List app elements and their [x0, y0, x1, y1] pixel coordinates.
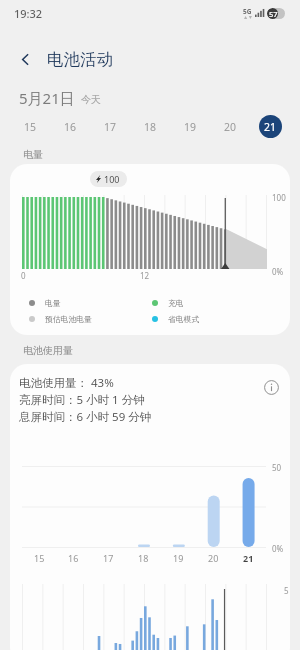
staticText: 100	[272, 192, 286, 203]
button[interactable]: 17	[99, 115, 122, 138]
staticText: 电量	[23, 148, 43, 161]
button[interactable]: 18	[139, 115, 162, 138]
button[interactable]: 预估电池电量	[29, 314, 92, 324]
staticText: 15	[24, 120, 37, 134]
button[interactable]: 0	[10, 164, 290, 335]
staticText: 15	[34, 552, 45, 564]
staticText: 21	[264, 120, 277, 134]
staticText: 5G	[243, 7, 252, 16]
staticText: 今天	[81, 93, 101, 106]
staticText: 50	[272, 462, 282, 473]
staticText: 17	[103, 552, 114, 564]
staticText: 电池使用量： 43% 亮屏时间：5 小时 1 分钟 息屏时间：6 小时 59 分…	[19, 375, 152, 424]
staticText: 20	[208, 552, 219, 564]
button[interactable]: 充电	[152, 298, 184, 308]
staticText: 19:32	[14, 6, 43, 21]
staticText: 17	[104, 120, 117, 134]
staticText: 19	[184, 120, 197, 134]
staticText: 21	[243, 552, 254, 564]
staticText: 18	[144, 120, 157, 134]
staticText: 电池使用量	[23, 344, 73, 357]
button[interactable]: 20	[219, 115, 242, 138]
button[interactable]: Info	[262, 378, 280, 396]
staticText: 57	[269, 9, 278, 19]
staticText: 5	[284, 585, 289, 596]
staticText: 电池活动	[47, 49, 113, 70]
staticText: 100	[104, 173, 120, 185]
button[interactable]: 19	[179, 115, 202, 138]
button[interactable]: 省电模式	[152, 314, 200, 324]
staticText: 0	[21, 270, 26, 281]
button[interactable]: 21	[259, 115, 282, 138]
staticText: 电量	[45, 298, 61, 308]
button[interactable]: 16	[59, 115, 82, 138]
staticText: 省电模式	[168, 314, 200, 324]
button[interactable]: 电量	[29, 298, 61, 308]
staticText: 16	[68, 552, 79, 564]
staticText: 16	[64, 120, 77, 134]
staticText: 0%	[272, 266, 284, 277]
button[interactable]: Back	[11, 45, 39, 73]
staticText: 18	[138, 552, 149, 564]
button[interactable]: 15	[19, 115, 42, 138]
staticText: 19	[173, 552, 184, 564]
staticText: 充电	[168, 298, 184, 308]
staticText: 5月21日	[19, 88, 75, 108]
staticText: 20	[224, 120, 237, 134]
staticText: 预估电池电量	[45, 314, 92, 324]
staticText: 0%	[272, 543, 284, 554]
staticText: 12	[140, 270, 150, 281]
